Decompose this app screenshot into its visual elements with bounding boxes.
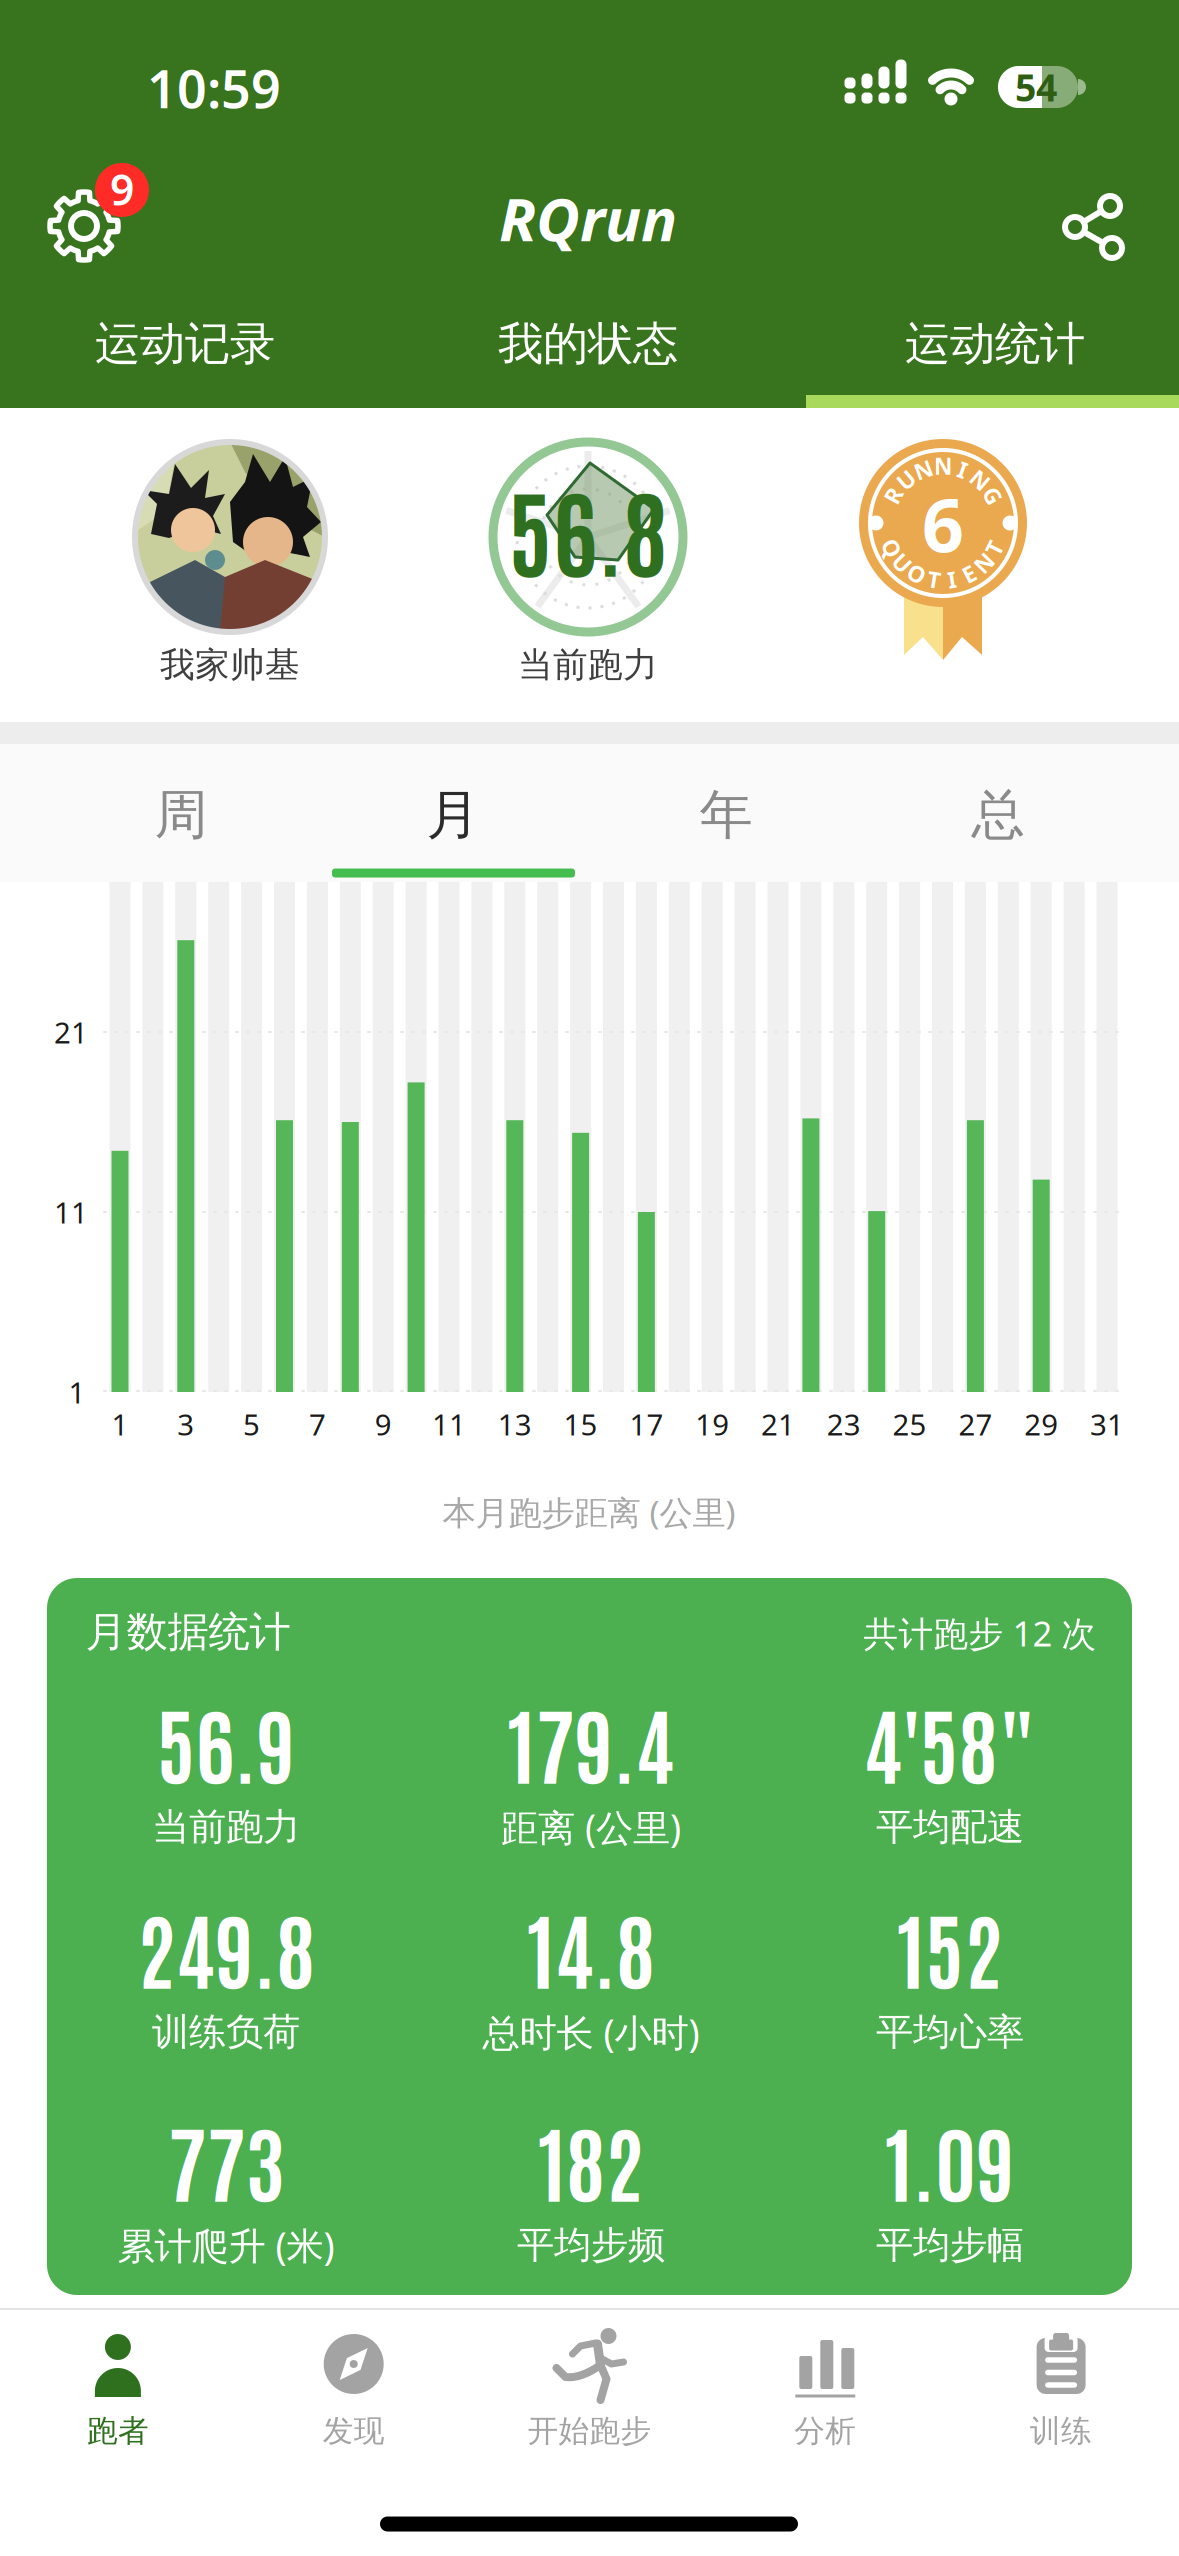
staticText: 5 xyxy=(243,1404,260,1443)
staticText: 4'58" xyxy=(863,1687,1036,1795)
staticText: 周 xyxy=(154,782,207,848)
staticText: N xyxy=(971,465,989,495)
staticText: 179.4 xyxy=(507,1687,674,1795)
staticText: 10:59 xyxy=(147,53,281,123)
staticText: 当前跑力 xyxy=(152,1804,300,1850)
staticText: R xyxy=(886,480,901,510)
staticText: 21 xyxy=(54,1012,88,1051)
staticText: 773 xyxy=(167,2105,284,2213)
staticText: 7 xyxy=(309,1404,326,1443)
staticText: 运动统计 xyxy=(905,316,1085,372)
staticText: G xyxy=(985,480,1001,510)
staticText: 249.8 xyxy=(137,1892,315,2000)
staticText: 6 xyxy=(922,475,964,573)
staticText: 56.9 xyxy=(156,1687,295,1795)
staticText: 当前跑力 xyxy=(518,644,658,686)
button[interactable]: 9 xyxy=(18,150,142,274)
staticText: 9 xyxy=(375,1404,392,1443)
staticText: T xyxy=(988,533,1001,563)
staticText: 9 xyxy=(110,161,134,217)
staticText: U xyxy=(894,548,911,578)
staticText: E xyxy=(963,558,976,589)
staticText: 发现 xyxy=(323,2412,385,2450)
staticText: 平均配速 xyxy=(876,1804,1024,1850)
staticText: 我的状态 xyxy=(498,316,678,372)
staticText: O xyxy=(908,558,926,589)
staticText: U xyxy=(897,465,914,495)
staticText: 我家帅基 xyxy=(160,644,300,686)
staticText: Q xyxy=(883,533,901,563)
staticText: 152 xyxy=(897,1892,1003,2000)
staticText: 13 xyxy=(498,1404,532,1443)
staticText: 分析 xyxy=(794,2412,856,2450)
staticText: 56.8 xyxy=(508,466,668,590)
staticText: 23 xyxy=(827,1404,861,1443)
staticText: T xyxy=(927,564,940,594)
button[interactable]: 跑者 xyxy=(0,2310,235,2556)
staticText: 1 xyxy=(111,1404,128,1443)
staticText: 本月跑步距离 (公里) xyxy=(442,1490,735,1534)
staticText: 平均步频 xyxy=(517,2222,665,2268)
button[interactable]: 月 xyxy=(323,760,583,870)
staticText: 共计跑步 12 次 xyxy=(863,1610,1096,1656)
staticText: 17 xyxy=(629,1404,663,1443)
staticText: RQrun xyxy=(499,178,677,258)
staticText: 开始跑步 xyxy=(527,2412,651,2450)
button[interactable] xyxy=(1055,187,1135,267)
staticText: 27 xyxy=(958,1404,992,1443)
staticText: 3 xyxy=(177,1404,194,1443)
button[interactable]: 总 xyxy=(868,760,1128,870)
staticText: 运动记录 xyxy=(95,316,275,372)
staticText: 月 xyxy=(426,782,479,848)
staticText: I xyxy=(958,454,967,485)
staticText: 14.8 xyxy=(527,1892,655,2000)
staticText: 15 xyxy=(564,1404,598,1443)
staticText: 月数据统计 xyxy=(85,1607,290,1657)
staticText: 距离 (公里) xyxy=(501,1802,681,1852)
staticText: 平均步幅 xyxy=(876,2222,1024,2268)
staticText: 11 xyxy=(432,1404,466,1443)
button[interactable]: 周 xyxy=(51,760,311,870)
button[interactable]: 训练 xyxy=(944,2310,1179,2556)
button[interactable]: 运动记录 xyxy=(15,296,355,391)
staticText: 29 xyxy=(1024,1404,1058,1443)
staticText: 年 xyxy=(699,782,752,848)
staticText: 训练 xyxy=(1030,2412,1092,2450)
staticText: N xyxy=(914,454,932,485)
staticText: I xyxy=(948,564,957,594)
staticText: 训练负荷 xyxy=(152,2009,300,2055)
staticText: 19 xyxy=(695,1404,729,1443)
staticText: 1 xyxy=(68,1372,85,1411)
staticText: N xyxy=(934,451,952,481)
staticText: 31 xyxy=(1090,1404,1124,1443)
staticText: 总时长 (小时) xyxy=(482,2007,699,2057)
staticText: 平均心率 xyxy=(876,2009,1024,2055)
staticText: 总 xyxy=(971,782,1024,848)
staticText: N xyxy=(975,548,993,578)
staticText: 54 xyxy=(1015,62,1057,112)
button[interactable]: 开始跑步 xyxy=(472,2310,707,2556)
button[interactable]: 运动统计 xyxy=(825,296,1165,391)
button[interactable]: 我的状态 xyxy=(418,296,758,391)
staticText: 11 xyxy=(54,1192,88,1231)
staticText: 182 xyxy=(538,2105,644,2213)
staticText: 跑者 xyxy=(87,2412,149,2450)
staticText: 1.09 xyxy=(885,2105,1015,2213)
staticText: 25 xyxy=(893,1404,927,1443)
button[interactable]: 分析 xyxy=(708,2310,943,2556)
staticText: 21 xyxy=(761,1404,795,1443)
staticText: 累计爬升 (米) xyxy=(117,2220,334,2270)
button[interactable]: 发现 xyxy=(236,2310,471,2556)
button[interactable]: 年 xyxy=(596,760,856,870)
